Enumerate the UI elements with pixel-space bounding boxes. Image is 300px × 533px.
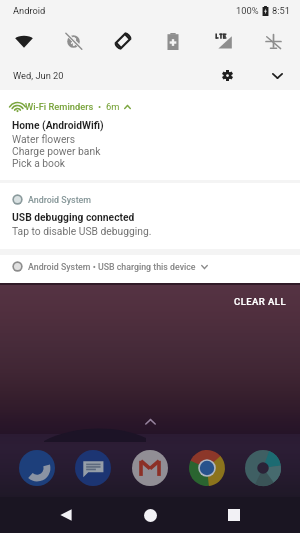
button[interactable]: Phone [13, 444, 61, 492]
button[interactable]: Wi-Fi [2, 21, 46, 61]
staticText: Android System [28, 195, 92, 205]
staticText: 100% [236, 5, 259, 16]
staticText: Wi-Fi Reminders [25, 101, 94, 112]
staticText: Water flowers [12, 133, 76, 145]
button[interactable]: Chrome [183, 444, 231, 492]
button[interactable] [0, 183, 300, 249]
button[interactable]: Back [48, 497, 84, 533]
staticText: 8:51 [272, 5, 290, 16]
button[interactable]: Bluetooth off [51, 21, 95, 61]
button[interactable]: Airplane mode [251, 21, 295, 61]
button[interactable]: Gmail [126, 444, 174, 492]
staticText: CLEAR ALL [234, 296, 286, 307]
button[interactable]: Recent apps [216, 497, 252, 533]
button[interactable]: Expand quick settings [265, 61, 289, 90]
staticText: Android System • USB charging this devic… [28, 262, 196, 272]
button[interactable] [0, 255, 300, 283]
button[interactable]: Messages [69, 444, 117, 492]
staticText: USB debugging connected [12, 211, 135, 223]
button[interactable] [0, 90, 300, 180]
staticText: Home (AndroidWifi) [12, 119, 104, 131]
staticText: Wed, Jun 20 [13, 70, 64, 81]
staticText: Pick a book [12, 157, 66, 169]
staticText: • [98, 101, 102, 112]
button[interactable]: Auto-rotate [101, 21, 145, 61]
button[interactable]: Settings [215, 61, 239, 90]
staticText: 6m [106, 101, 120, 112]
button[interactable]: Camera [239, 444, 287, 492]
button[interactable]: Battery saver [151, 21, 195, 61]
button[interactable]: CLEAR ALL [228, 292, 292, 311]
button[interactable]: Mobile data LTE [201, 21, 245, 61]
staticText: Charge power bank [12, 145, 101, 157]
staticText: Android [13, 5, 46, 16]
button[interactable]: Home [132, 497, 168, 533]
staticText: Tap to disable USB debugging. [12, 225, 152, 237]
